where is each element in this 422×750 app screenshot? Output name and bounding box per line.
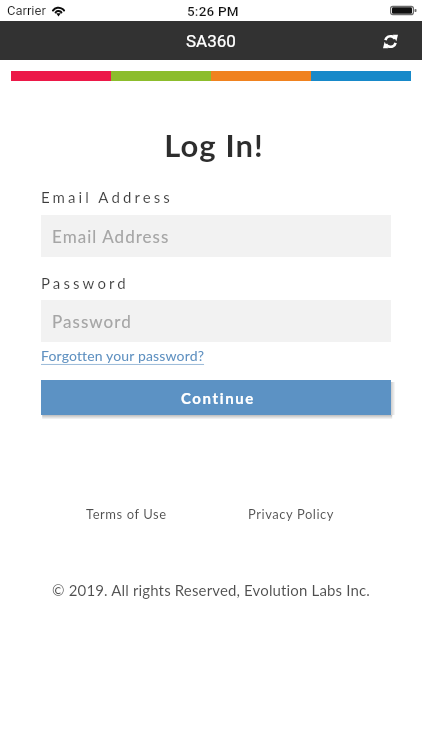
button[interactable]: Continue xyxy=(41,380,391,415)
staticText: Privacy Policy xyxy=(248,506,335,522)
staticText: Terms of Use xyxy=(86,506,167,522)
staticText: Password xyxy=(41,274,129,292)
staticText: Password xyxy=(52,311,132,331)
button[interactable]: Email Address xyxy=(41,215,391,257)
button[interactable]: Forgotten your password? xyxy=(41,347,205,364)
staticText: Log In! xyxy=(3,126,422,163)
staticText: SA360 xyxy=(186,31,236,51)
staticText: Carrier xyxy=(7,3,46,18)
staticText: Forgotten your password? xyxy=(41,347,205,364)
button[interactable]: Password xyxy=(41,300,391,342)
button[interactable]: Privacy Policy xyxy=(248,506,335,522)
staticText: © 2019. All rights Reserved, Evolution L… xyxy=(0,581,422,599)
button[interactable]: Refresh xyxy=(378,29,402,53)
staticText: Continue xyxy=(181,389,255,407)
button[interactable]: Terms of Use xyxy=(86,506,167,522)
staticText: Email Address xyxy=(52,226,170,246)
staticText: Email Address xyxy=(41,188,173,206)
staticText: 5:26 PM xyxy=(187,3,239,19)
